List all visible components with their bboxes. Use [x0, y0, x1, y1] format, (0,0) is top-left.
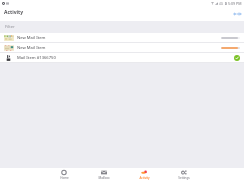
staticText: Mailbox [98, 176, 110, 180]
staticText: Home [60, 176, 69, 180]
staticText: Filter [5, 24, 15, 30]
staticText: Activity [139, 176, 150, 180]
staticText: New Mail Item [17, 35, 46, 41]
button[interactable]: Activity [124, 170, 164, 180]
button[interactable]: Mail Item #1366750 [0, 53, 244, 63]
staticText: Activity [4, 9, 24, 16]
staticText: 4G [219, 2, 224, 6]
staticText: 5:09 PM [228, 1, 242, 6]
button[interactable]: Home [44, 170, 84, 180]
button[interactable]: Settings [164, 170, 204, 180]
staticText: Settings [178, 176, 190, 180]
staticText: New Mail Item [17, 45, 46, 51]
button[interactable]: Sync [233, 12, 242, 16]
button[interactable]: New Mail Item [0, 33, 244, 43]
button[interactable]: Mailbox [84, 170, 124, 180]
button[interactable]: New Mail Item [0, 43, 244, 53]
staticText: Mail Item #1366750 [17, 55, 56, 61]
